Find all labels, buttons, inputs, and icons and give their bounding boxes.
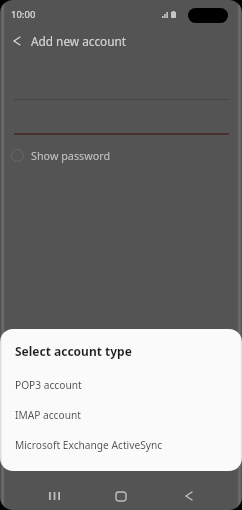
staticText: 10:00 <box>11 8 36 21</box>
staticText: Show password <box>31 148 111 163</box>
staticText: Microsoft Exchange ActiveSync <box>15 438 163 452</box>
button[interactable] <box>8 146 27 165</box>
button[interactable]: Microsoft Exchange ActiveSync <box>0 430 242 460</box>
button[interactable]: Home <box>103 478 139 510</box>
staticText: IMAP account <box>15 408 81 422</box>
button[interactable]: POP3 account <box>0 370 242 400</box>
button[interactable]: Recent apps <box>36 478 72 510</box>
button[interactable]: Back <box>171 478 207 510</box>
staticText: POP3 account <box>15 378 82 392</box>
button[interactable]: Back <box>4 28 30 54</box>
staticText: Select account type <box>15 343 132 359</box>
button[interactable]: IMAP account <box>0 400 242 430</box>
staticText: Add new account <box>31 33 127 49</box>
